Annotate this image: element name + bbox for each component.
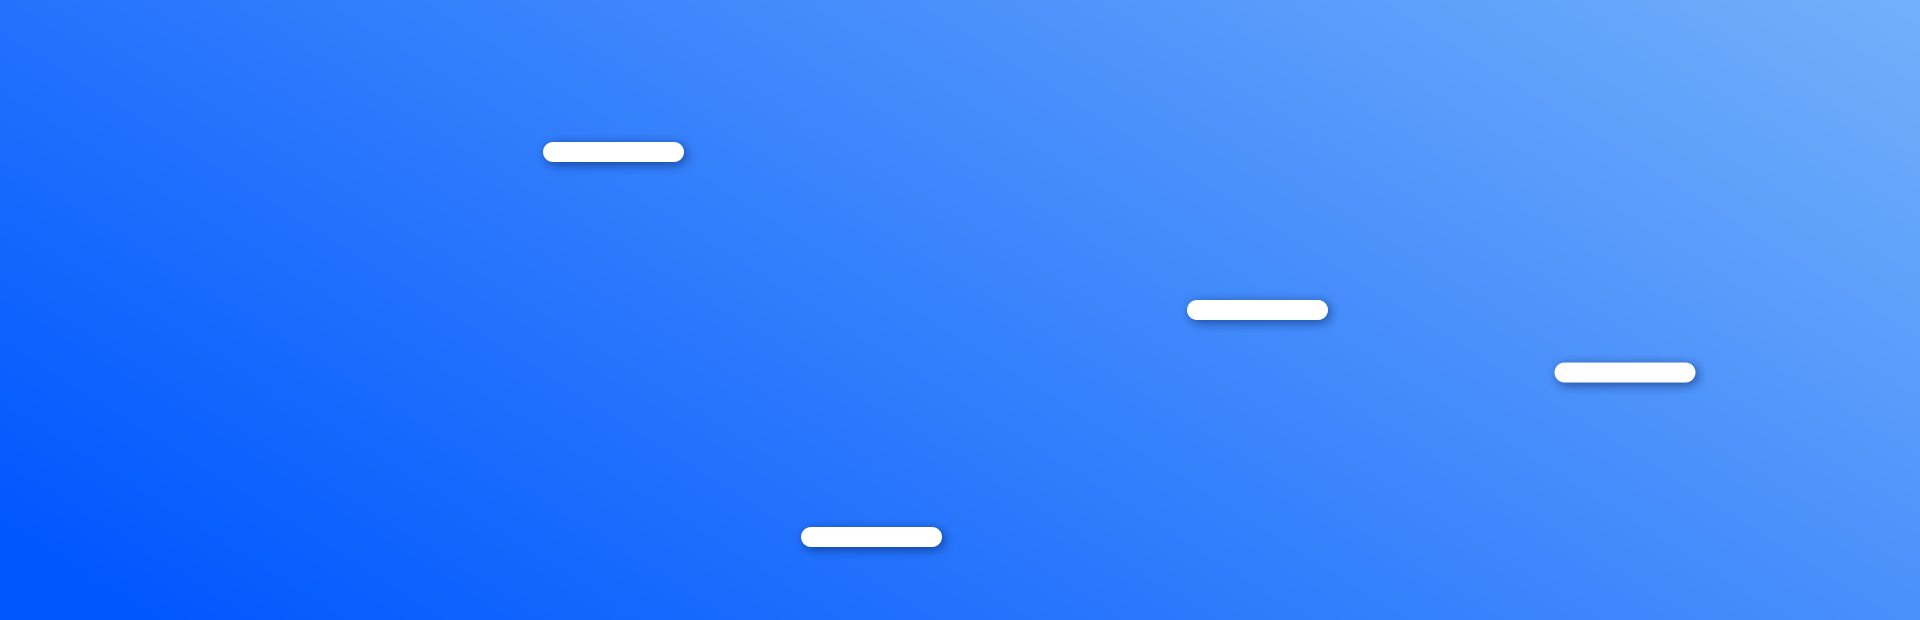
button[interactable]: Option 1: [543, 142, 684, 162]
button[interactable]: Option 3: [1554, 362, 1695, 382]
button[interactable]: Option 2: [1187, 300, 1328, 320]
button[interactable]: Option 4: [801, 527, 942, 547]
